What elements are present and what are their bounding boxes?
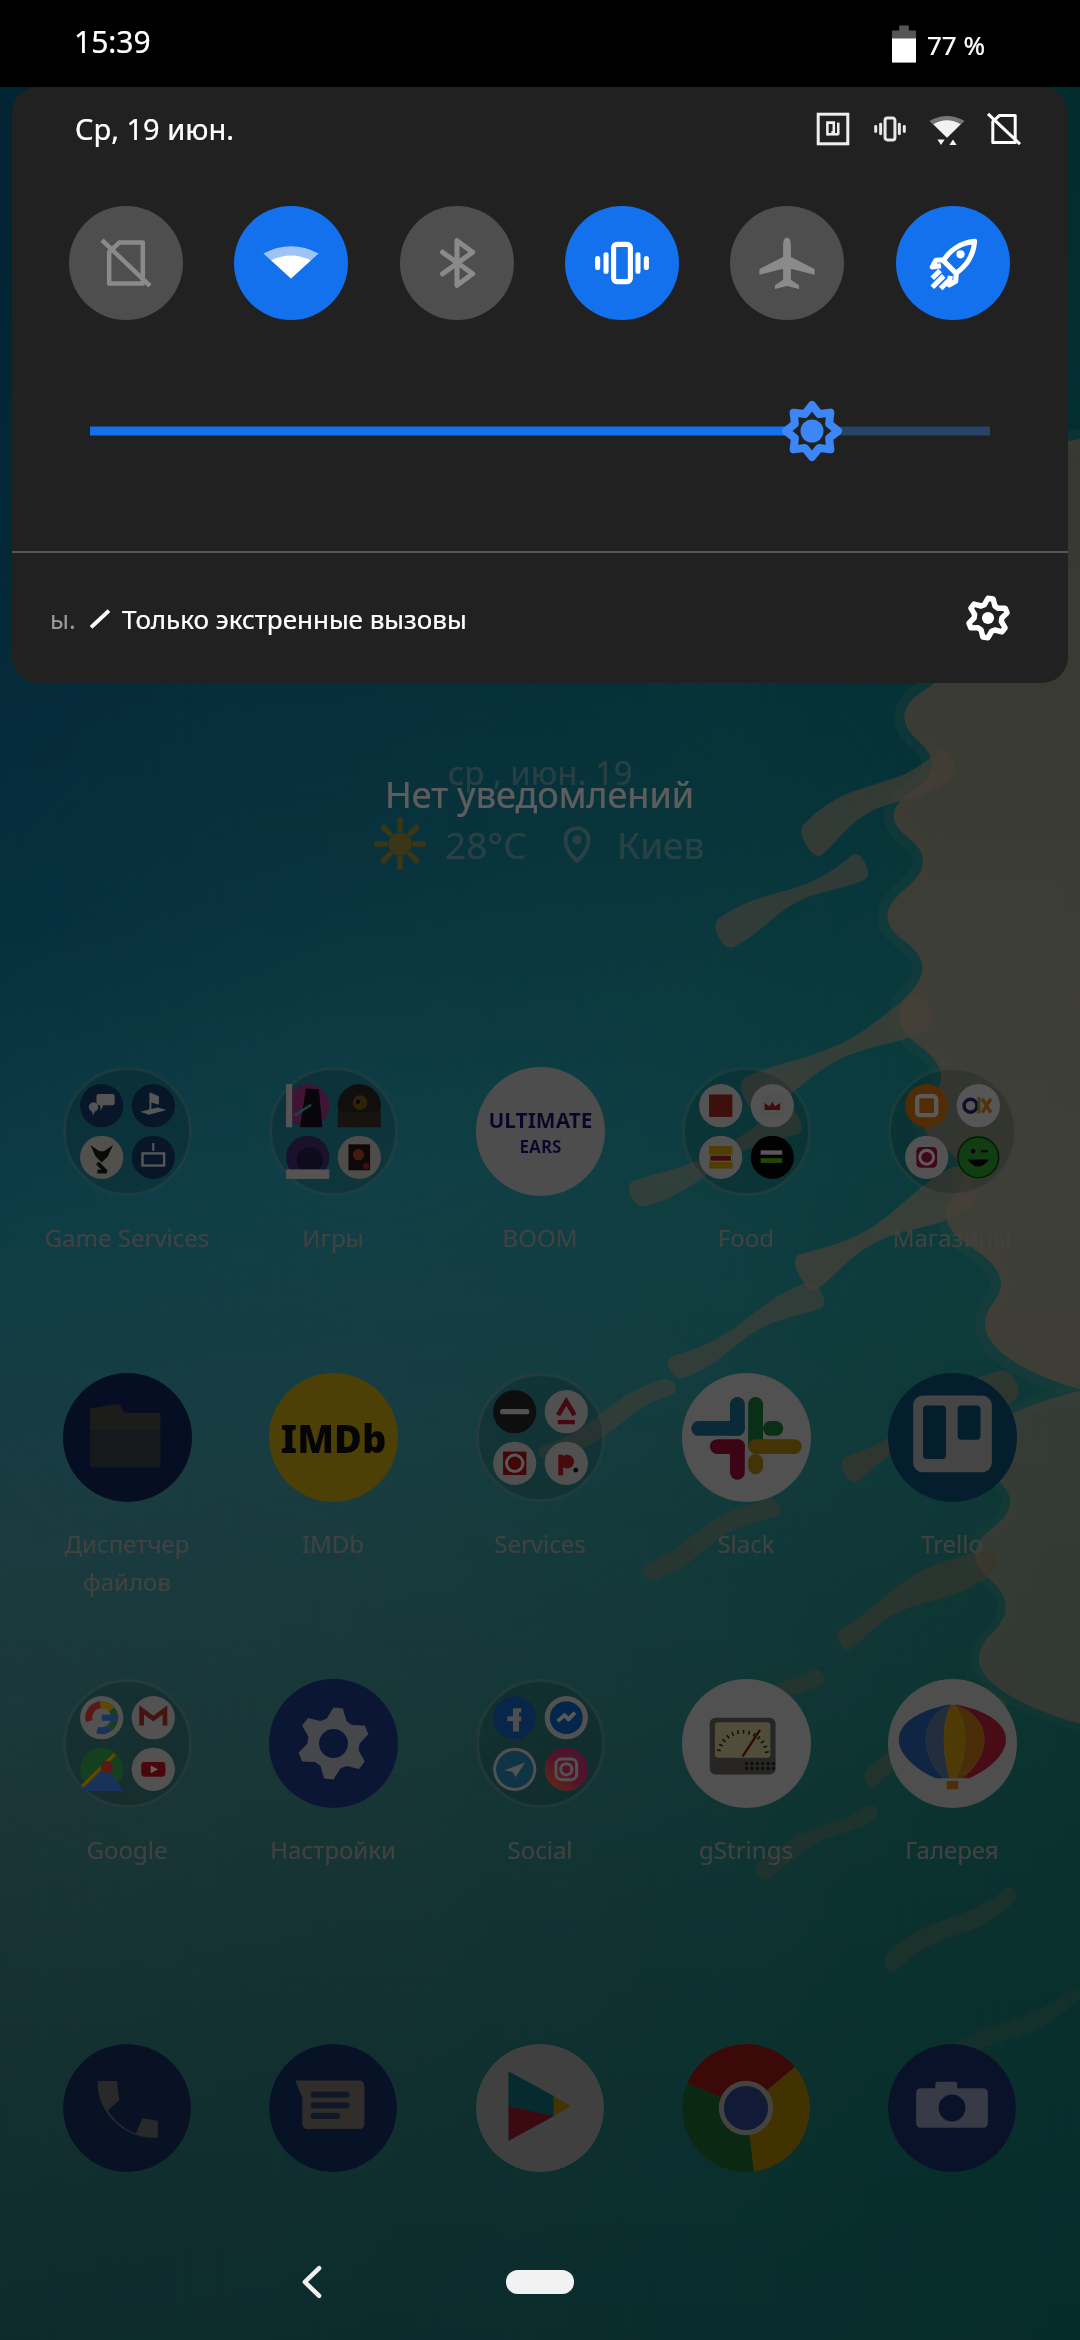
button[interactable]: Boost [896, 206, 1010, 320]
button[interactable]: Back [282, 2252, 342, 2312]
staticText: Нет уведомлений [385, 770, 695, 819]
button[interactable]: Social [440, 1679, 640, 1866]
button[interactable]: Игры [233, 1067, 433, 1254]
button[interactable]: Game Services [27, 1067, 227, 1254]
button[interactable]: Trello [852, 1373, 1052, 1560]
button[interactable]: Настройки [233, 1679, 433, 1866]
staticText: ср , июн. 19 [448, 750, 633, 795]
staticText: Галерея [852, 1833, 1052, 1866]
staticText: Slack [646, 1527, 846, 1560]
button[interactable]: Галерея [852, 1679, 1052, 1866]
button[interactable]: Settings [948, 578, 1028, 658]
staticText: ULTIMATE [476, 1106, 605, 1135]
button[interactable]: Do not disturb [69, 206, 183, 320]
staticText: Services [440, 1527, 640, 1560]
staticText: Киев [617, 819, 705, 869]
staticText: 28°C [445, 819, 527, 869]
staticText: IMDb [233, 1527, 433, 1560]
staticText: Игры [233, 1221, 433, 1254]
staticText: gStrings [646, 1833, 846, 1866]
button[interactable]: Google [27, 1679, 227, 1866]
button[interactable]: Wi-Fi [234, 206, 348, 320]
staticText: Google [27, 1833, 227, 1866]
button[interactable]: Food [646, 1067, 846, 1254]
staticText: Магазины [852, 1221, 1052, 1254]
button[interactable]: Play Store [476, 2044, 604, 2172]
button[interactable]: Airplane mode [730, 206, 844, 320]
button[interactable]: Camera [888, 2044, 1016, 2172]
staticText: ы. [50, 602, 76, 636]
staticText: Ср, 19 июн. [75, 109, 234, 148]
staticText: Food [646, 1221, 846, 1254]
button[interactable]: Home [506, 2270, 574, 2294]
staticText: 77 % [927, 27, 986, 62]
button[interactable]: IMDb [233, 1373, 433, 1560]
staticText: EARS [476, 1135, 605, 1158]
staticText: BOOM [440, 1221, 640, 1254]
button[interactable]: Chrome [682, 2044, 810, 2172]
button[interactable]: Диспетчер файлов [27, 1373, 227, 1598]
staticText: Настройки [233, 1833, 433, 1866]
button[interactable]: Магазины [852, 1067, 1052, 1254]
button[interactable]: Bluetooth [400, 206, 514, 320]
button[interactable]: Messages [269, 2044, 397, 2172]
button[interactable]: Back [282, 2252, 342, 2312]
staticText: IMDb [269, 1412, 398, 1464]
button[interactable]: Slack [646, 1373, 846, 1560]
button[interactable]: Brightness [12, 401, 1068, 461]
button[interactable]: gStrings [646, 1679, 846, 1866]
staticText: Game Services [27, 1221, 227, 1254]
button[interactable]: ULTIMATE [440, 1067, 640, 1254]
button[interactable]: Services [440, 1373, 640, 1560]
staticText: 15:39 [74, 21, 151, 62]
button[interactable]: Home [506, 2270, 574, 2294]
staticText: Social [440, 1833, 640, 1866]
staticText: Диспетчер файлов [27, 1527, 227, 1598]
staticText: Trello [852, 1527, 1052, 1560]
button[interactable]: Phone [63, 2044, 191, 2172]
staticText: Только экстренные вызовы [122, 601, 467, 636]
button[interactable]: Vibrate [565, 206, 679, 320]
